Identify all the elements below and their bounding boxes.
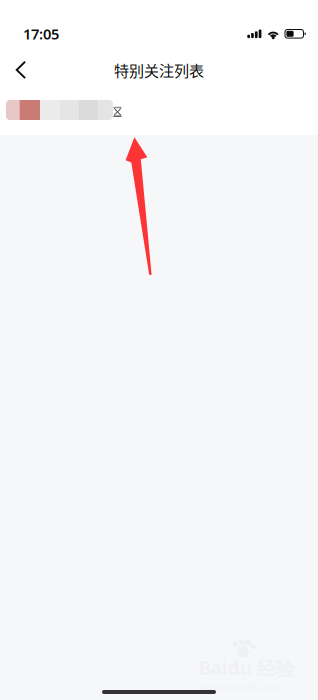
staticText: 17:05 <box>23 24 59 44</box>
button[interactable]: Back <box>1 48 41 92</box>
staticText: jingyan.baidu.com <box>202 680 284 693</box>
staticText: 特别关注列表 <box>114 59 204 81</box>
button[interactable] <box>0 92 318 135</box>
